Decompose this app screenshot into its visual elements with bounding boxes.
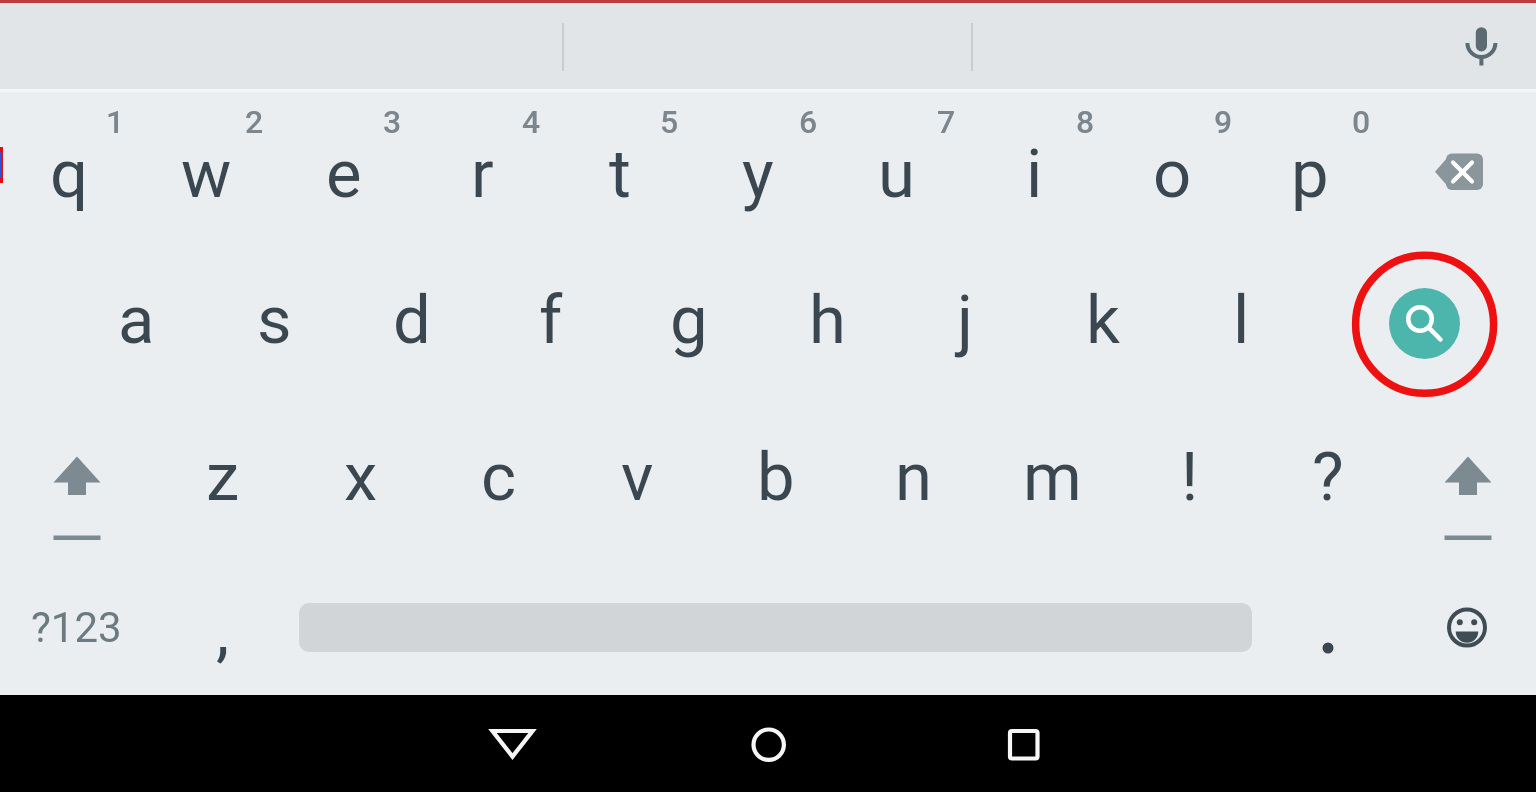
staticText: t xyxy=(609,135,631,214)
staticText: ? xyxy=(1312,438,1344,517)
staticText: r xyxy=(471,135,494,214)
staticText: 8 xyxy=(1076,103,1095,141)
button[interactable]: m xyxy=(982,407,1122,547)
staticText: , xyxy=(216,592,230,671)
staticText: l xyxy=(1233,281,1250,360)
button[interactable]: d xyxy=(342,250,482,390)
button[interactable]: f xyxy=(481,250,621,390)
staticText: x xyxy=(344,438,378,517)
staticText: i xyxy=(1026,135,1043,214)
button[interactable] xyxy=(1410,5,1530,85)
button[interactable] xyxy=(10,410,145,550)
button[interactable]: o xyxy=(1102,104,1242,244)
staticText: 3 xyxy=(383,103,402,141)
button[interactable] xyxy=(1390,110,1530,240)
staticText: 7 xyxy=(937,103,956,141)
staticText: a xyxy=(118,281,155,360)
button[interactable]: j xyxy=(895,250,1035,390)
button[interactable]: h xyxy=(757,250,897,390)
staticText: n xyxy=(895,438,933,517)
staticText: 4 xyxy=(522,103,541,141)
button[interactable]: z xyxy=(153,407,293,547)
button[interactable]: ! xyxy=(1120,407,1260,547)
button[interactable] xyxy=(440,700,585,790)
staticText: y xyxy=(742,135,774,214)
staticText: k xyxy=(1086,281,1120,360)
staticText: q xyxy=(50,135,89,214)
staticText: 5 xyxy=(660,103,679,141)
staticText: 2 xyxy=(245,103,264,141)
button[interactable]: x xyxy=(291,407,431,547)
button[interactable]: u xyxy=(826,104,966,244)
staticText: 0 xyxy=(1352,103,1371,141)
button[interactable]: y xyxy=(688,104,828,244)
button[interactable]: l xyxy=(1171,250,1311,390)
staticText: b xyxy=(757,438,795,517)
button[interactable]: e xyxy=(274,104,414,244)
button[interactable] xyxy=(951,700,1096,790)
staticText: d xyxy=(393,281,431,360)
button[interactable]: ?123 xyxy=(6,557,146,697)
staticText: p xyxy=(1291,135,1329,214)
button[interactable]: k xyxy=(1033,250,1173,390)
staticText: ?123 xyxy=(31,603,122,652)
button[interactable]: i xyxy=(964,104,1104,244)
button[interactable]: c xyxy=(429,407,569,547)
button[interactable] xyxy=(1400,585,1535,680)
button[interactable]: w xyxy=(136,104,276,244)
button[interactable]: b xyxy=(706,407,846,547)
staticText: w xyxy=(181,135,232,214)
button[interactable] xyxy=(1389,288,1460,359)
button[interactable]: s xyxy=(204,250,344,390)
staticText: h xyxy=(809,281,846,360)
button[interactable]: t xyxy=(550,104,690,244)
staticText: s xyxy=(257,281,292,360)
staticText: 6 xyxy=(799,103,818,141)
button[interactable] xyxy=(1400,410,1535,550)
button[interactable]: ? xyxy=(1258,407,1398,547)
staticText: ! xyxy=(1181,438,1199,517)
button[interactable] xyxy=(1265,605,1395,695)
button[interactable]: , xyxy=(153,561,293,701)
staticText: j xyxy=(957,281,974,360)
button[interactable]: r xyxy=(412,104,552,244)
button[interactable]: a xyxy=(66,250,206,390)
staticText: g xyxy=(670,281,708,360)
staticText: o xyxy=(1153,135,1192,214)
staticText: 9 xyxy=(1214,103,1233,141)
staticText: v xyxy=(621,438,654,517)
staticText: c xyxy=(481,438,517,517)
staticText: m xyxy=(1023,438,1082,517)
button[interactable]: v xyxy=(567,407,707,547)
staticText: f xyxy=(539,281,563,360)
staticText: e xyxy=(326,135,362,214)
staticText: 1 xyxy=(106,103,125,141)
button[interactable]: q xyxy=(0,104,139,244)
button[interactable]: g xyxy=(619,250,759,390)
staticText: z xyxy=(206,438,240,517)
staticText: u xyxy=(878,135,915,214)
button[interactable] xyxy=(696,700,841,790)
button[interactable]: n xyxy=(844,407,984,547)
button[interactable]: p xyxy=(1240,104,1380,244)
